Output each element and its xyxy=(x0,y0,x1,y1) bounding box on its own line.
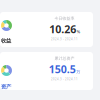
staticText: 10.26 xyxy=(49,22,76,36)
staticText: 2024.3 - 2024.11 xyxy=(51,77,78,81)
staticText: % xyxy=(77,29,80,34)
button[interactable]: 收益 xyxy=(0,12,93,47)
staticText: 2024.3 - 2024.11 xyxy=(51,37,78,41)
staticText: 万 xyxy=(76,69,80,74)
staticText: 今日收益率 xyxy=(54,16,74,21)
staticText: 资产 xyxy=(1,83,11,90)
staticText: 累计总资产 xyxy=(54,56,74,61)
staticText: 150.5 xyxy=(49,62,76,76)
staticText: 收益 xyxy=(1,37,11,44)
button[interactable]: 资产 xyxy=(0,52,93,90)
